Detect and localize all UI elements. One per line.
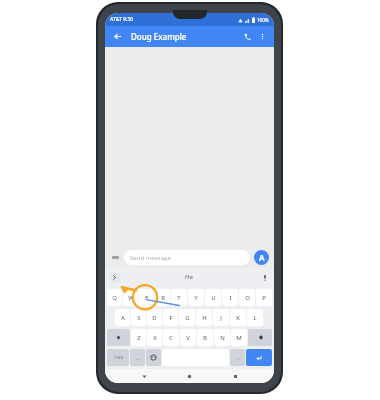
staticText: L	[253, 314, 257, 322]
staticText: .	[237, 354, 239, 362]
button[interactable]: Shift	[107, 329, 130, 346]
button[interactable]: J	[213, 309, 229, 326]
staticText: K	[236, 314, 240, 322]
staticText: Y	[194, 294, 198, 302]
button[interactable]: S	[131, 309, 146, 326]
staticText: U	[211, 294, 216, 302]
staticText: R	[161, 294, 165, 302]
staticText: H	[202, 314, 207, 322]
staticText: O	[245, 294, 250, 302]
button[interactable]: Y	[188, 289, 204, 306]
staticText: AT&T 9:30	[110, 16, 134, 23]
button[interactable]: Back	[138, 370, 151, 383]
staticText: P	[262, 294, 266, 302]
button[interactable]: Q	[107, 289, 122, 306]
staticText: C	[169, 334, 173, 342]
button[interactable]: More options	[257, 31, 268, 42]
button[interactable]: H	[196, 309, 212, 326]
button[interactable]: Emoji	[146, 349, 161, 366]
button[interactable]: Attach	[110, 252, 121, 263]
button[interactable]: U	[205, 289, 221, 306]
button[interactable]: N	[214, 329, 230, 346]
button[interactable]: L	[247, 309, 263, 326]
staticText: F	[169, 314, 173, 322]
button[interactable]: B	[197, 329, 213, 346]
button[interactable]: A	[115, 309, 130, 326]
button[interactable]: Z	[131, 329, 146, 346]
staticText: T	[177, 294, 181, 302]
staticText: 100%	[257, 17, 269, 23]
button[interactable]: Backspace	[248, 329, 272, 346]
button[interactable]: X	[147, 329, 162, 346]
staticText: D	[152, 314, 157, 322]
staticText: He	[185, 273, 193, 281]
staticText: Z	[137, 334, 141, 342]
button[interactable]: Back	[111, 30, 124, 43]
button[interactable]: Expand toolbar	[109, 272, 120, 283]
staticText: ?123	[114, 355, 123, 360]
staticText: ,	[137, 354, 139, 362]
button[interactable]: D	[147, 309, 162, 326]
staticText: Doug Example	[131, 31, 187, 42]
button[interactable]: P	[256, 289, 272, 306]
staticText: Send message	[130, 254, 171, 262]
button[interactable]: R	[155, 289, 170, 306]
staticText: M	[236, 334, 242, 342]
button[interactable]: .	[230, 349, 245, 366]
button[interactable]: Home	[183, 370, 196, 383]
button[interactable]: He	[179, 271, 199, 283]
staticText: J	[220, 314, 222, 322]
button[interactable]: I	[222, 289, 238, 306]
staticText: A	[259, 252, 265, 263]
button[interactable]: Recent apps	[229, 370, 242, 383]
staticText: S	[137, 314, 141, 322]
button[interactable]: Voice input	[259, 272, 270, 283]
button[interactable]: W	[123, 289, 138, 306]
staticText: G	[185, 314, 190, 322]
button[interactable]: ?123	[107, 349, 129, 366]
button[interactable]: ,	[130, 349, 145, 366]
button[interactable]: T	[171, 289, 187, 306]
staticText: X	[153, 334, 157, 342]
button[interactable]: Call	[241, 30, 254, 43]
staticText: I	[229, 294, 232, 302]
button[interactable]: E	[139, 289, 154, 306]
button[interactable]: M	[231, 329, 247, 346]
button[interactable]: Send message	[124, 250, 250, 265]
button[interactable]: C	[163, 329, 179, 346]
staticText: B	[203, 334, 207, 342]
staticText: V	[186, 334, 190, 342]
button[interactable]: K	[230, 309, 246, 326]
staticText: E	[145, 294, 149, 302]
button[interactable]: Send	[254, 250, 269, 265]
button[interactable]: V	[180, 329, 196, 346]
button[interactable]: Enter	[246, 349, 272, 366]
button[interactable]: F	[163, 309, 178, 326]
button[interactable]: G	[179, 309, 195, 326]
staticText: Q	[112, 294, 117, 302]
staticText: A	[121, 314, 125, 322]
button[interactable]: O	[239, 289, 255, 306]
staticText: N	[220, 334, 225, 342]
staticText: W	[128, 294, 134, 302]
